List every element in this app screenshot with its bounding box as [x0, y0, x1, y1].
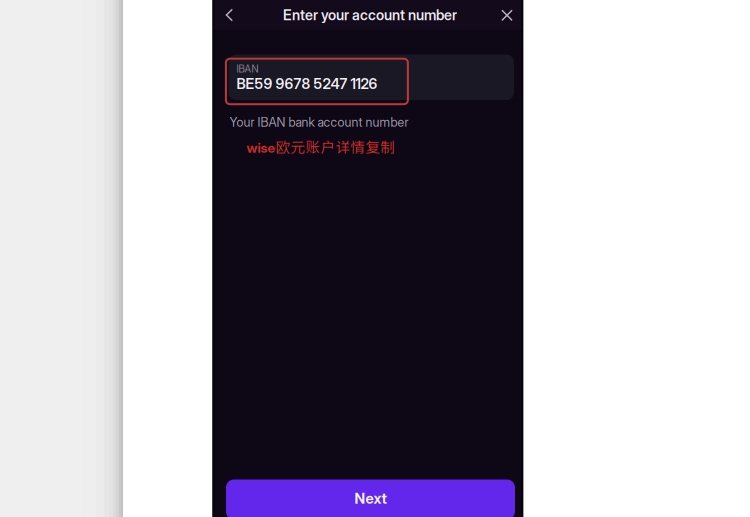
staticText: Next: [354, 490, 386, 507]
staticText: BE59 9678 5247 1126: [236, 75, 377, 92]
button[interactable]: IBAN: [228, 54, 514, 100]
staticText: IBAN: [236, 63, 258, 75]
staticText: wise: [246, 140, 274, 156]
staticText: Your IBAN bank account number: [229, 114, 408, 130]
button[interactable]: Next: [226, 479, 515, 517]
staticText: Enter your account number: [283, 6, 457, 24]
button[interactable]: Close: [492, 0, 522, 30]
staticText: 欧元账户详情复制: [275, 136, 395, 157]
button[interactable]: Back: [214, 0, 244, 30]
